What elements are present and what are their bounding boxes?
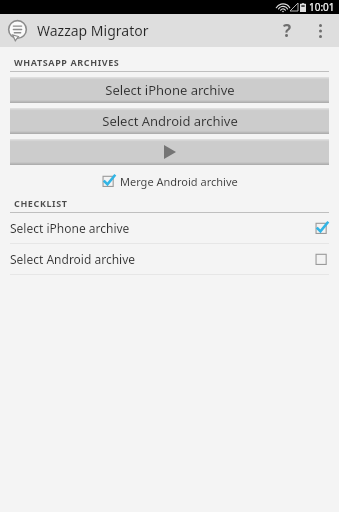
staticText: ? [283,19,292,42]
button[interactable]: More options [305,14,335,47]
button[interactable]: Start migration [10,139,329,165]
staticText: WHATSAPP ARCHIVES [14,56,120,68]
button[interactable]: Select Android archive [0,244,339,274]
staticText: CHECKLIST [14,197,68,209]
button[interactable]: Merge Android archive [102,174,238,189]
button[interactable]: Select Android archive [10,108,329,134]
staticText: Wazzap Migrator [37,21,149,40]
button[interactable]: Select iPhone archive [0,213,339,243]
button[interactable]: Help [269,14,305,47]
staticText: Select Android archive [102,112,238,130]
staticText: Select iPhone archive [105,81,235,99]
staticText: 10:01 [309,0,335,14]
button[interactable]: Select iPhone archive [10,77,329,103]
staticText: Select iPhone archive [10,220,130,236]
staticText: Select Android archive [10,251,136,267]
staticText: Merge Android archive [120,174,238,189]
